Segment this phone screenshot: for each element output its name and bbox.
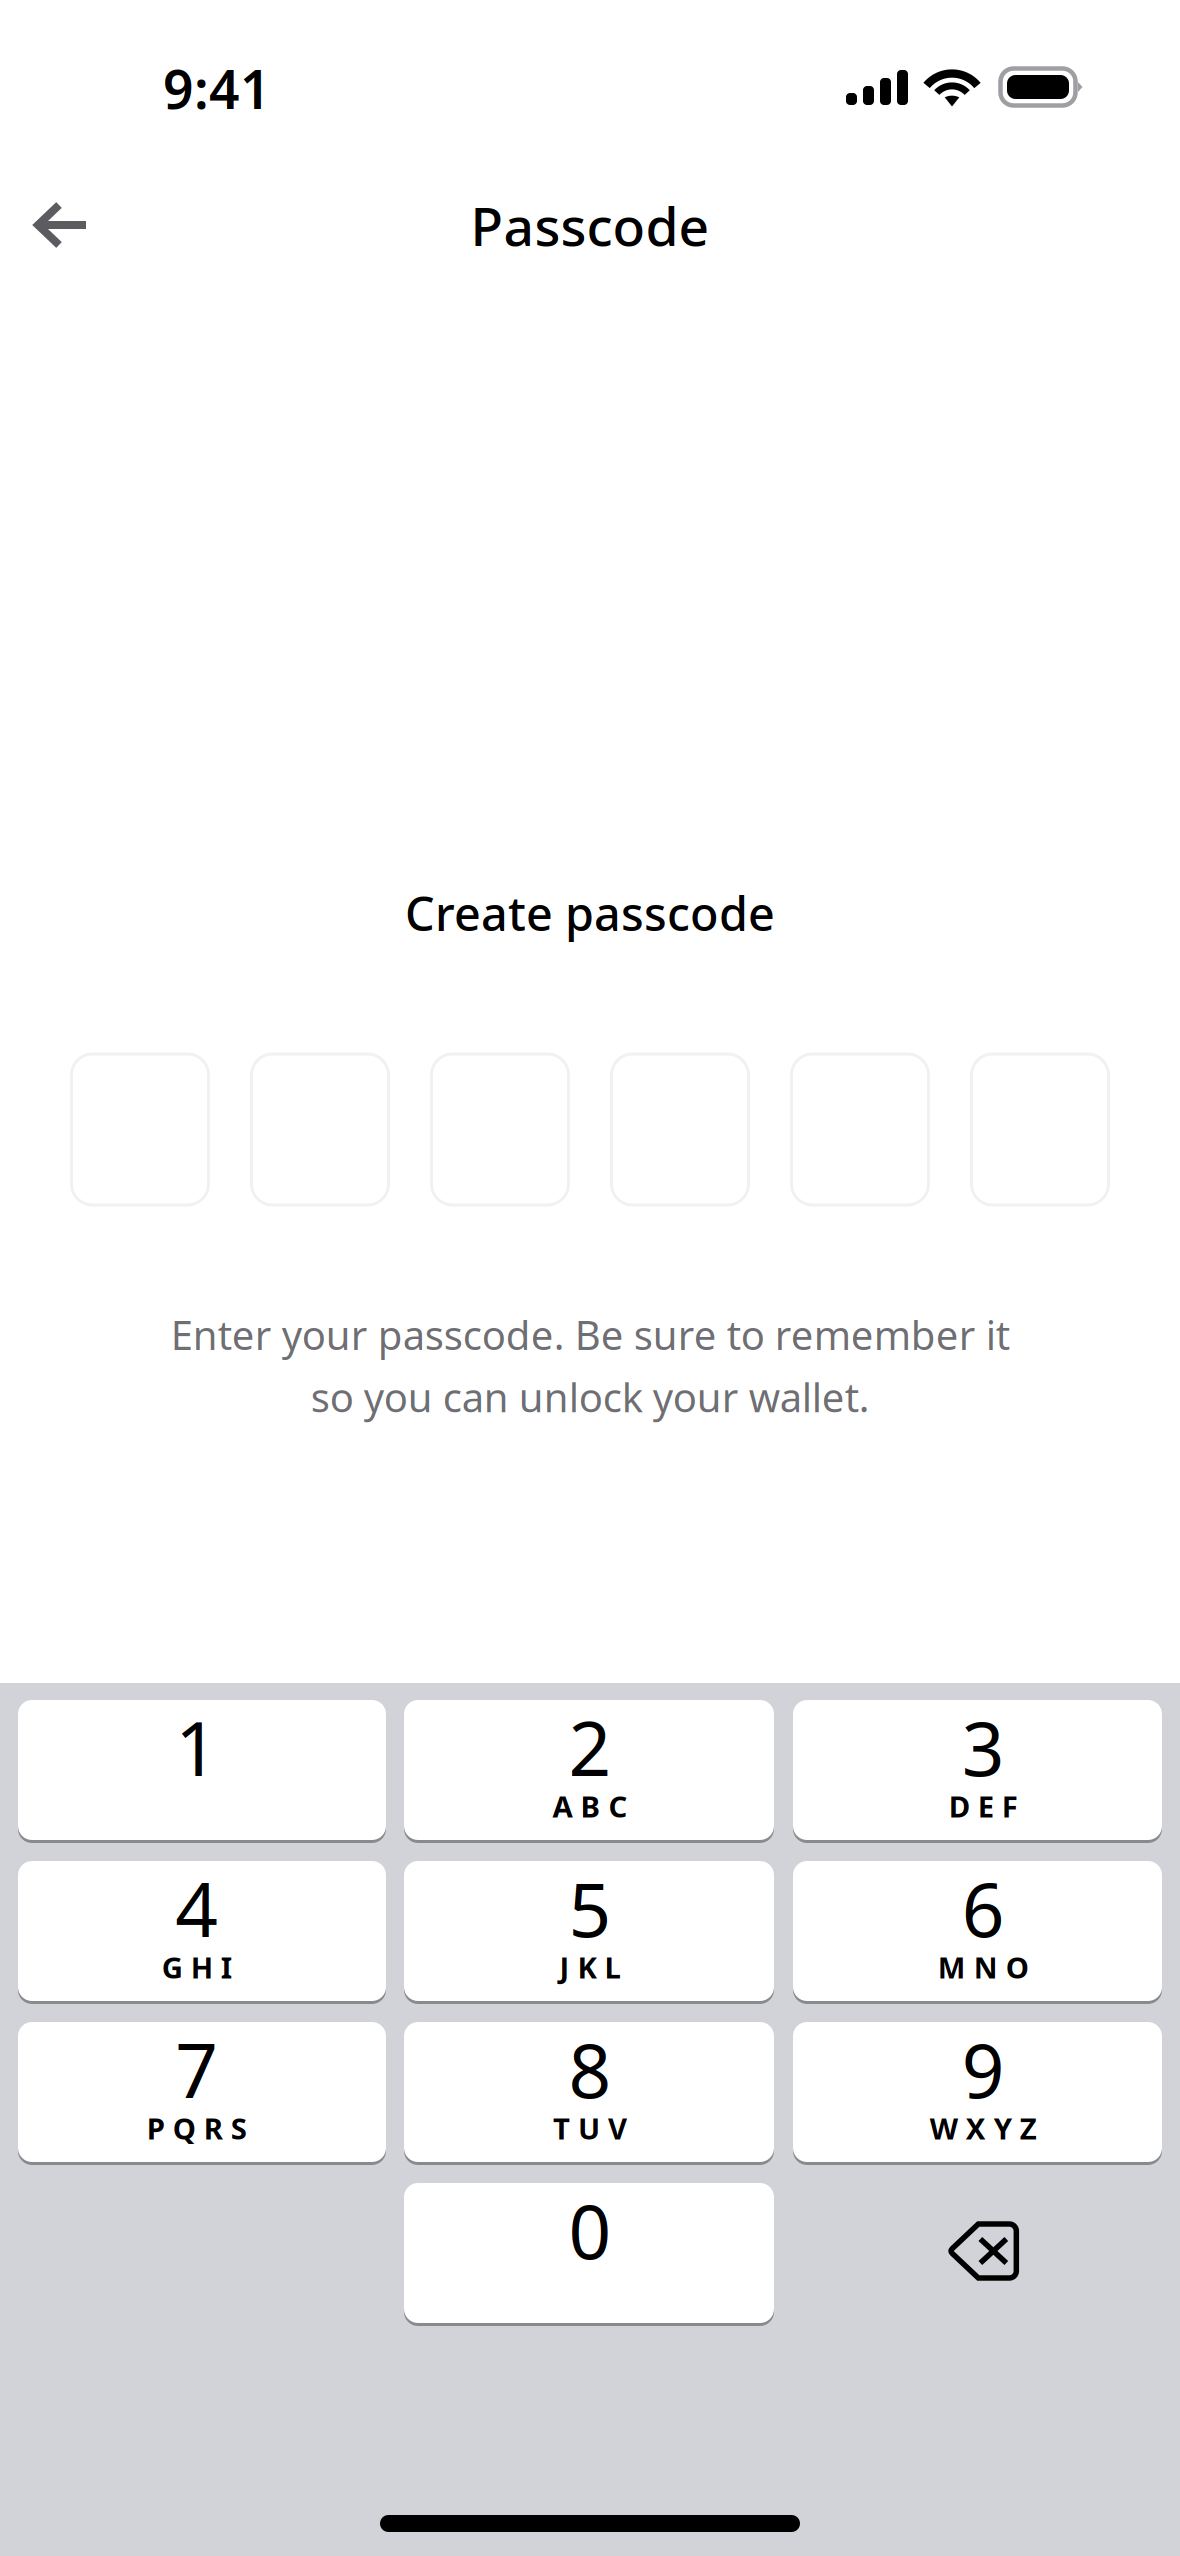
staticText: 6 — [962, 1858, 1005, 1958]
staticText: Passcode — [470, 190, 709, 261]
staticText: 4 — [175, 1858, 218, 1958]
staticText: 1 — [175, 1697, 218, 1797]
staticText: G H I — [162, 1947, 232, 1986]
button[interactable]: 2 — [393, 1700, 787, 1840]
staticText: Enter your passcode. Be sure to remember… — [170, 1308, 1009, 1423]
button[interactable]: Delete — [787, 2183, 1180, 2323]
staticText: A B C — [552, 1786, 627, 1825]
staticText: W X Y Z — [930, 2108, 1037, 2147]
staticText: P Q R S — [147, 2108, 247, 2147]
staticText: M N O — [938, 1947, 1029, 1986]
staticText: 9 — [962, 2019, 1005, 2119]
staticText: D E F — [949, 1786, 1018, 1825]
button[interactable]: 3 — [787, 1700, 1180, 1840]
staticText: J K L — [559, 1947, 620, 1986]
staticText: 9:41 — [163, 53, 271, 124]
button[interactable]: 8 — [393, 2022, 787, 2162]
staticText: T U V — [553, 2108, 627, 2147]
staticText: 8 — [568, 2019, 611, 2119]
button[interactable]: Back — [0, 170, 124, 274]
staticText: 0 — [568, 2180, 611, 2280]
staticText: 7 — [175, 2019, 218, 2119]
button[interactable]: 0 — [393, 2183, 787, 2323]
button[interactable]: 6 — [787, 1861, 1180, 2001]
button[interactable]: 1 — [0, 1700, 393, 1840]
button[interactable]: 9 — [787, 2022, 1180, 2162]
staticText: 2 — [568, 1697, 611, 1797]
staticText: Create passcode — [405, 882, 775, 944]
button[interactable]: 5 — [393, 1861, 787, 2001]
button[interactable]: 7 — [0, 2022, 393, 2162]
button[interactable]: 4 — [0, 1861, 393, 2001]
staticText: 3 — [962, 1697, 1005, 1797]
staticText: 5 — [568, 1858, 611, 1958]
